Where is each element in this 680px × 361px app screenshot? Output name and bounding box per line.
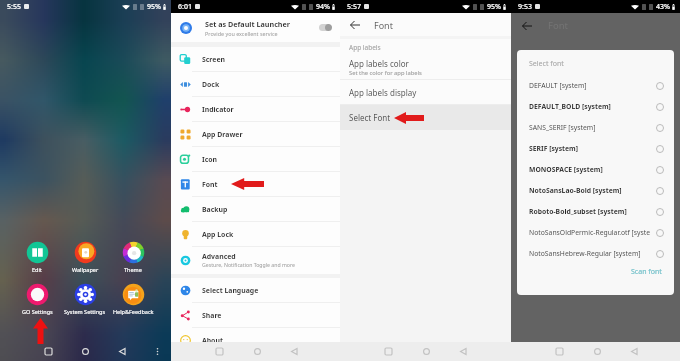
button[interactable]: NotoSansHebrew-Regular [system] [517,243,674,264]
staticText: Icon [202,155,218,164]
staticText: Screen [202,55,226,64]
button[interactable]: Back [285,342,303,361]
staticText: NotoSansHebrew-Regular [system] [529,249,653,258]
button[interactable]: Set as Default Launcher [171,13,340,42]
staticText: Roboto-Bold_subset [system] [529,207,653,216]
button[interactable]: Home [417,342,435,361]
staticText: Theme [124,266,142,273]
button[interactable]: Back [454,342,472,361]
button[interactable]: App Drawer [171,122,340,146]
button[interactable]: Font [171,172,340,196]
staticText: Font [202,180,218,189]
staticText: 94% [316,2,330,12]
staticText: App Lock [202,230,234,239]
button[interactable]: Recents [210,342,228,361]
button[interactable]: Wallpaper [61,240,109,273]
staticText: Font [548,19,568,32]
button[interactable]: Back [519,18,535,34]
button[interactable]: Back [347,17,362,32]
staticText: Provide you excellent service [205,30,278,37]
button[interactable]: Select Language [171,278,340,302]
staticText: Select font [529,59,564,69]
button[interactable]: App Lock [171,222,340,246]
button[interactable]: Screen [171,47,340,71]
button[interactable]: GO Settings [13,282,61,315]
button[interactable]: System Settings [61,282,109,315]
button[interactable]: Help&Feedback [109,282,157,315]
staticText: App labels display [349,87,417,98]
staticText: Indicator [202,105,234,114]
staticText: App labels [349,43,381,52]
staticText: 5:57 [347,2,361,12]
staticText: SERIF [system] [529,144,653,153]
staticText: Edit [32,266,42,273]
staticText: 6:01 [178,2,192,12]
staticText: Set as Default Launcher [205,19,291,29]
button[interactable]: MONOSPACE [system] [517,159,674,180]
button[interactable]: More options [148,342,166,361]
button[interactable]: Toggle default launcher [319,24,332,31]
button[interactable]: Backup [171,197,340,221]
button[interactable]: Back [113,342,131,361]
button[interactable]: Recents [550,342,568,361]
button[interactable]: NotoSansLao-Bold [system] [517,180,674,201]
button[interactable]: Home [76,342,94,361]
staticText: DEFAULT_BOLD [system] [529,102,653,111]
staticText: System Settings [64,308,106,315]
staticText: Gesture, Notification Toggle and more [202,261,295,268]
staticText: Dock [202,80,220,89]
button[interactable]: About [171,328,340,352]
button[interactable]: Share [171,303,340,327]
button[interactable]: Icon [171,147,340,171]
staticText: 95% [147,2,161,12]
button[interactable]: App labels display [340,80,511,104]
staticText: Scan font [631,267,662,277]
button[interactable]: Recents [379,342,397,361]
button[interactable]: Theme [109,240,157,273]
staticText: Help&Feedback [113,308,154,315]
staticText: App labels color [349,58,409,69]
button[interactable]: Indicator [171,97,340,121]
button[interactable]: Back [625,342,643,361]
button[interactable]: NotoSansOldPermic-Regular.otf [syste [517,222,674,243]
button[interactable]: App labels color [340,55,511,79]
staticText: Select Font [349,112,391,123]
button[interactable]: Home [588,342,606,361]
staticText: About [202,336,223,345]
staticText: DEFAULT [system] [529,81,653,90]
staticText: Advanced [202,252,236,261]
staticText: Font [374,19,393,31]
button[interactable]: SERIF [system] [517,138,674,159]
staticText: App Drawer [202,130,243,139]
button[interactable]: SANS_SERIF [system] [517,117,674,138]
button[interactable]: Advanced [171,247,340,273]
staticText: GO Settings [22,308,53,315]
staticText: 5:55 [7,2,21,12]
staticText: 9:53 [518,2,532,12]
button[interactable]: DEFAULT_BOLD [system] [517,96,674,117]
staticText: Set the color for app labels [349,69,422,77]
staticText: NotoSansLao-Bold [system] [529,186,653,195]
staticText: MONOSPACE [system] [529,165,653,174]
staticText: 43% [656,2,670,12]
button[interactable]: DEFAULT [system] [517,75,674,96]
button[interactable]: Roboto-Bold_subset [system] [517,201,674,222]
button[interactable]: Home [248,342,266,361]
staticText: Select Language [202,286,259,295]
button[interactable]: Recents [39,342,57,361]
button[interactable]: Scan font [619,264,674,280]
staticText: 95% [487,2,501,12]
button[interactable]: Dock [171,72,340,96]
button[interactable]: Edit [13,240,61,273]
staticText: Backup [202,205,228,214]
staticText: SANS_SERIF [system] [529,123,653,132]
staticText: Share [202,311,222,320]
staticText: NotoSansOldPermic-Regular.otf [syste [529,228,653,237]
staticText: Wallpaper [72,266,99,273]
button[interactable]: Select Font [340,105,511,130]
